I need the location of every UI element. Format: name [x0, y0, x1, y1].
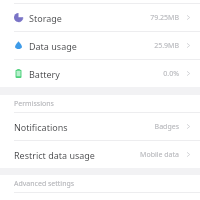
staticText: Restrict data usage	[14, 149, 95, 161]
button[interactable]: Battery	[0, 60, 200, 87]
button[interactable]: Storage	[0, 4, 200, 31]
staticText: Battery	[29, 68, 60, 80]
staticText: Mobile data	[140, 150, 179, 160]
staticText: 79.25MB	[150, 13, 179, 23]
staticText: Badges	[154, 122, 179, 132]
staticText: Advanced settings	[14, 179, 75, 189]
staticText: Notifications	[14, 121, 68, 133]
button[interactable]: Notifications	[0, 113, 200, 140]
staticText: 25.9MB	[154, 41, 179, 51]
staticText: Data usage	[29, 40, 77, 52]
staticText: Storage	[29, 12, 62, 24]
staticText: 0.0%	[163, 69, 179, 79]
button[interactable]: Data usage	[0, 32, 200, 59]
button[interactable]: Restrict data usage	[0, 141, 200, 168]
staticText: Permissions	[14, 99, 54, 109]
